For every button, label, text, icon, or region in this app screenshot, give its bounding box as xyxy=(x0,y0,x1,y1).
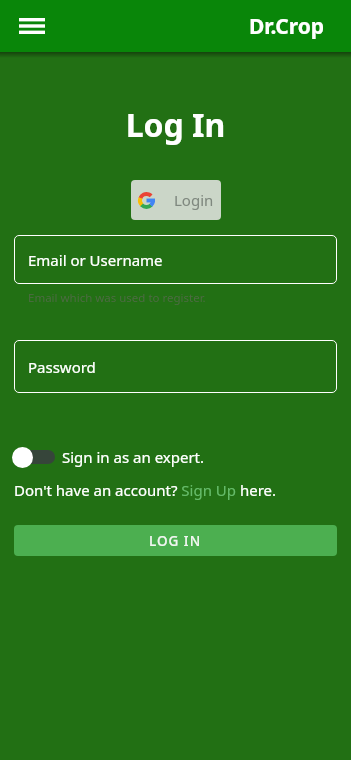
staticText: Email which was used to register. xyxy=(28,290,206,306)
button[interactable]: Login xyxy=(131,180,221,220)
button[interactable]: Email or Username xyxy=(14,235,337,284)
button[interactable]: Password xyxy=(14,340,337,393)
button[interactable]: LOG IN xyxy=(14,525,337,556)
staticText: Password xyxy=(28,357,96,377)
staticText: LOG IN xyxy=(149,532,202,550)
button[interactable] xyxy=(19,18,45,34)
staticText: Email or Username xyxy=(28,250,163,270)
button[interactable]: Sign in as an expert. xyxy=(12,446,205,468)
button[interactable]: Don't have an account? Sign Up here. xyxy=(14,480,277,500)
staticText: Sign in as an expert. xyxy=(62,447,205,467)
staticText: Dr.Crop xyxy=(249,12,325,41)
staticText: Login xyxy=(174,190,214,210)
staticText: Log In xyxy=(0,103,351,147)
